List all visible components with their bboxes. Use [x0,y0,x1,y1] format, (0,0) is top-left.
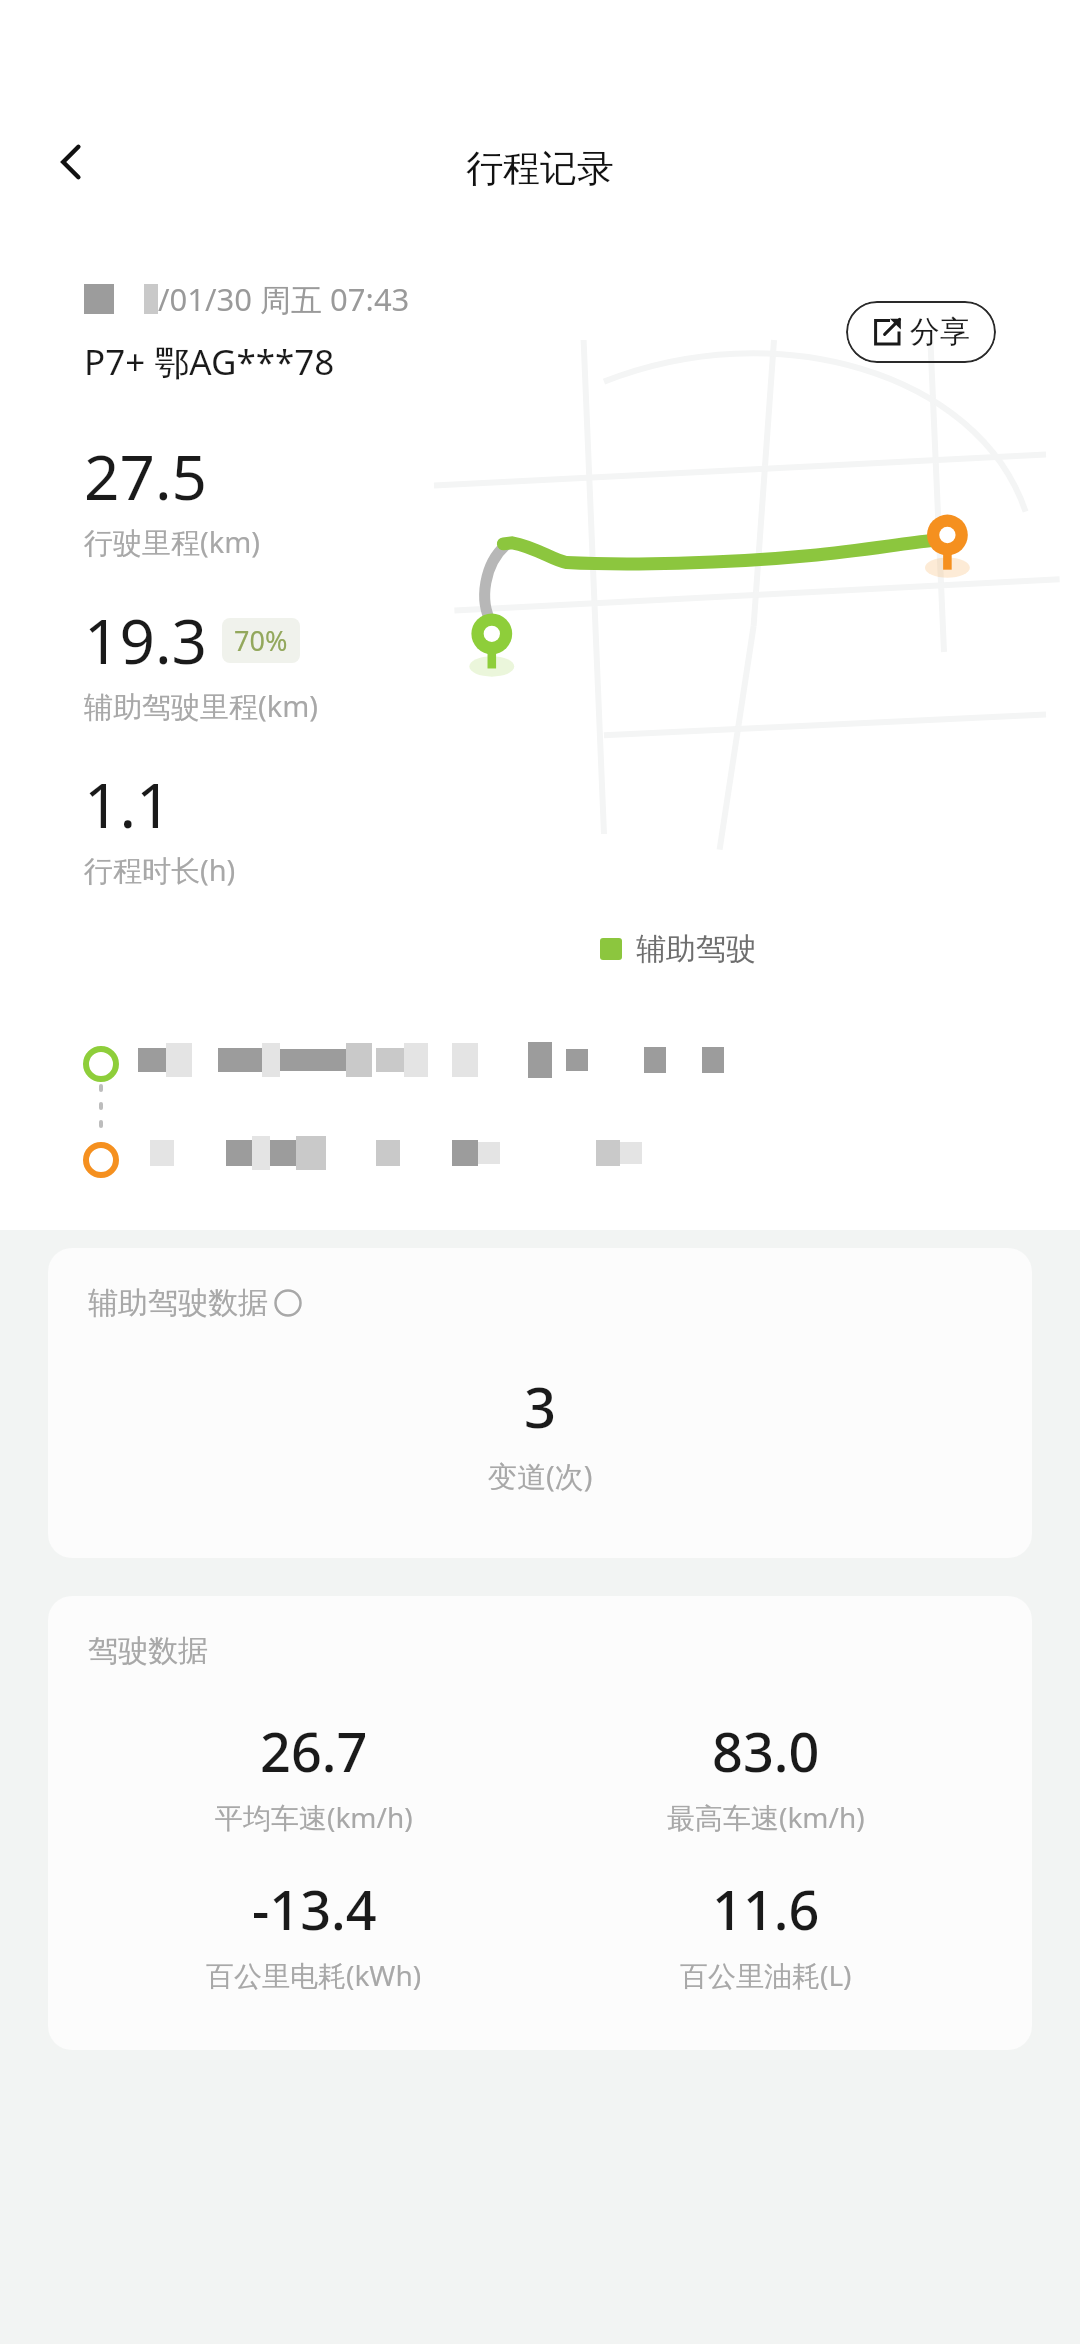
staticText: P7+ 鄂AG***78 [84,338,335,386]
button[interactable]: Back [36,126,108,198]
staticText: 11.6 [712,1872,820,1946]
staticText: 最高车速(km/h) [667,1798,865,1836]
staticText: 3 [524,1368,557,1444]
staticText: 辅助驾驶数据 [88,1284,268,1322]
staticText: -13.4 [252,1872,377,1946]
staticText: 行驶里程(km) [84,522,261,562]
staticText: 19.3 [84,598,208,682]
staticText: 辅助驾驶里程(km) [84,686,319,726]
staticText: 百公里油耗(L) [680,1956,852,1994]
staticText: 行程时长(h) [84,850,236,890]
button[interactable]: Help [274,1289,302,1317]
staticText: 变道(次) [488,1456,593,1496]
staticText: 行程记录 [466,145,614,192]
staticText: 驾驶数据 [88,1632,208,1670]
staticText: 平均车速(km/h) [215,1798,413,1836]
staticText: 70% [234,622,288,659]
staticText: 1.1 [84,762,172,846]
staticText: 83.0 [712,1714,820,1788]
staticText: 辅助驾驶 [636,930,756,968]
staticText: 百公里电耗(kWh) [206,1956,422,1994]
staticText: /01/30 周五 07:43 [158,278,410,320]
staticText: 27.5 [84,434,208,518]
staticText: 26.7 [260,1714,368,1788]
button[interactable]: 分享 [846,301,996,363]
staticText: 分享 [910,313,970,351]
